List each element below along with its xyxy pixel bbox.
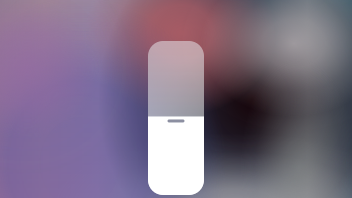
button[interactable]: Brightness xyxy=(148,41,204,195)
